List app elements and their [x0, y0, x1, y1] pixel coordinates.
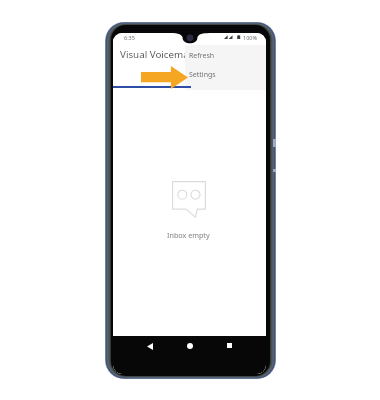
button[interactable]: Home — [180, 336, 200, 374]
staticText: 6:35 — [124, 34, 135, 41]
button[interactable]: Recents — [219, 336, 239, 374]
staticText: Refresh — [189, 51, 215, 61]
staticText: Visual Voicemail — [120, 48, 194, 61]
staticText: Settings — [189, 70, 216, 80]
button[interactable]: Refresh — [185, 46, 266, 66]
staticText: 100% — [243, 34, 258, 41]
button[interactable]: Back — [140, 336, 160, 374]
button[interactable]: Settings — [185, 65, 266, 85]
staticText: Inbox empty — [167, 230, 210, 240]
